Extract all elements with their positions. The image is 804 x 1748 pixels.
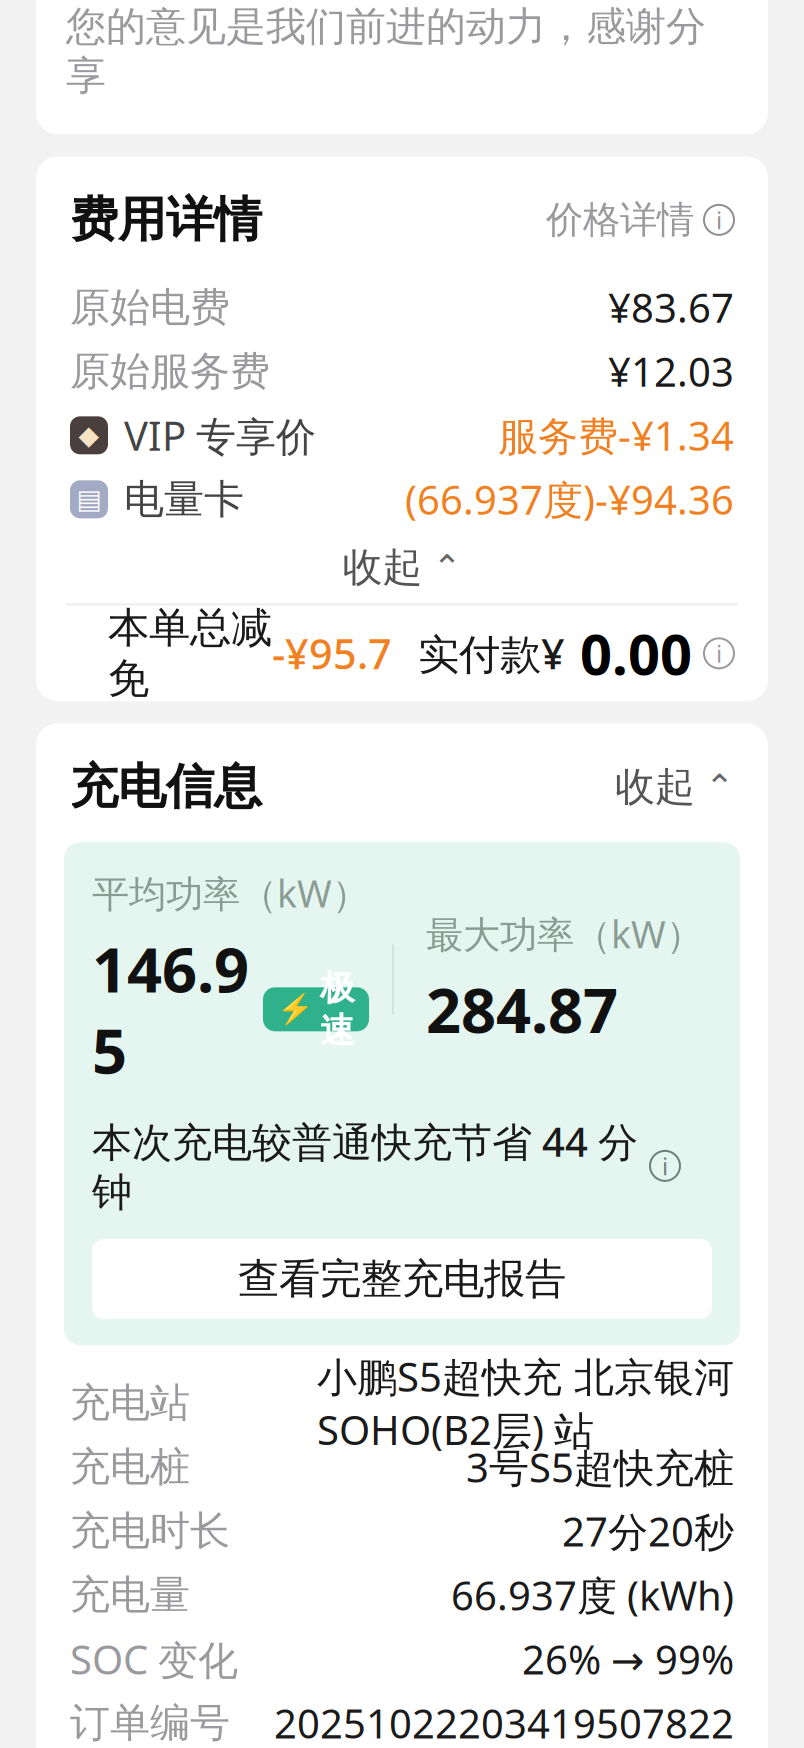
button[interactable]: 我的评价： <box>36 0 768 134</box>
staticText: 284.87 <box>426 969 618 1050</box>
staticText: i <box>716 204 722 236</box>
button[interactable]: 查看完整充电报告 <box>92 1239 712 1319</box>
staticText: 收起 <box>342 543 422 592</box>
staticText: 本单总减免 <box>108 603 272 704</box>
staticText: 充电信息 <box>70 757 262 816</box>
staticText: 3号S5超快充桩 <box>466 1440 734 1493</box>
staticText: ⌃ <box>705 767 734 806</box>
staticText: ⌃ <box>432 548 461 587</box>
staticText: i <box>716 637 722 669</box>
staticText: ¥83.67 <box>608 281 734 334</box>
staticText: 原始服务费 <box>70 347 270 396</box>
staticText: 充电时长 <box>70 1506 230 1555</box>
staticText: 费用详情 <box>70 190 262 249</box>
staticText: 原始电费 <box>70 283 230 332</box>
staticText: 收起 <box>615 762 695 811</box>
staticText: 您的意见是我们前进的动力，感谢分享 <box>66 2 706 100</box>
staticText: i <box>662 1150 668 1182</box>
staticText: 服务费-¥1.34 <box>498 409 734 462</box>
button[interactable]: 收起 <box>36 531 768 603</box>
staticText: 极速 <box>320 967 355 1052</box>
staticText: 26% → 99% <box>522 1632 734 1685</box>
staticText: -¥95.7 <box>272 626 392 681</box>
staticText: ◆ <box>78 420 99 450</box>
staticText: 充电量 <box>70 1570 190 1619</box>
staticText: 查看完整充电报告 <box>238 1254 566 1304</box>
staticText: 最大功率（kW） <box>426 909 703 959</box>
staticText: 价格详情 <box>546 197 694 243</box>
staticText: 电量卡 <box>124 475 244 524</box>
button[interactable]: 收起 <box>615 762 734 811</box>
staticText: 订单编号 <box>70 1698 230 1747</box>
staticText: 146.95 <box>92 928 249 1091</box>
staticText: 本次充电较普通快充节省 44 分钟 <box>92 1115 638 1217</box>
staticText: (66.937度)-¥94.36 <box>405 473 734 526</box>
staticText: ▤ <box>76 484 101 514</box>
staticText: 实付款¥ <box>418 626 565 681</box>
staticText: 小鹏S5超快充 北京银河SOHO(B2层) 站 <box>317 1350 734 1456</box>
staticText: 27分20秒 <box>562 1504 734 1557</box>
staticText: 0.00 <box>565 616 692 690</box>
staticText: ¥12.03 <box>608 345 734 398</box>
staticText: ⚡ <box>277 993 314 1026</box>
staticText: SOC 变化 <box>70 1632 238 1686</box>
staticText: VIP 专享价 <box>124 409 316 462</box>
staticText: 充电桩 <box>70 1442 190 1491</box>
staticText: 66.937度 (kWh) <box>451 1568 734 1621</box>
button[interactable]: 价格详情 <box>546 197 734 243</box>
staticText: 平均功率（kW） <box>92 868 369 918</box>
staticText: 20251022203419507822 <box>274 1696 734 1748</box>
staticText: 充电站 <box>70 1378 190 1427</box>
